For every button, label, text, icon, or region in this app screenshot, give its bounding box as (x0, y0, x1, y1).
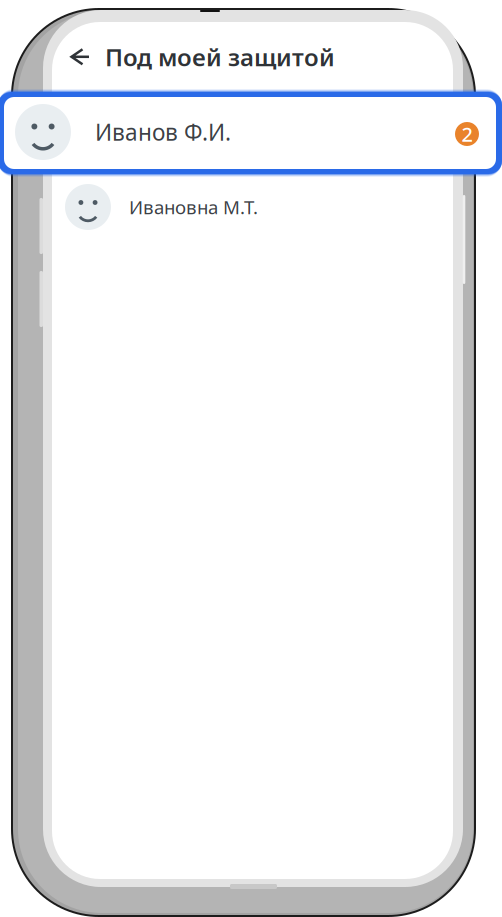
button[interactable]: Ивановна М.Т. (65, 176, 445, 238)
button[interactable]: Назад (55, 35, 105, 79)
staticText: Ивановна М.Т. (129, 195, 258, 219)
staticText: Под моей защитой (105, 41, 335, 73)
staticText: Иванов Ф.И. (95, 117, 231, 147)
button[interactable]: Иванов Ф.И. (0, 89, 502, 177)
staticText: 2 (461, 121, 472, 147)
